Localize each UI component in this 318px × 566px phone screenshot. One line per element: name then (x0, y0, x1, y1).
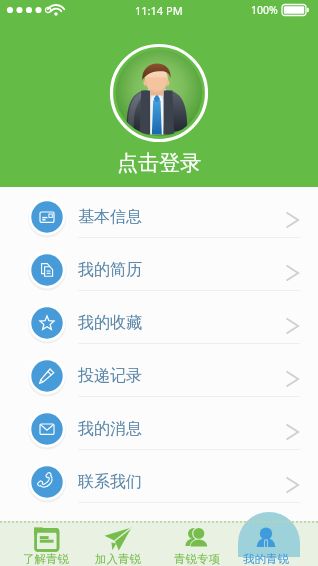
button[interactable]: 青锐专项 (162, 521, 232, 566)
staticText: 我的简历 (78, 260, 142, 280)
button[interactable]: 基本信息 (0, 190, 318, 243)
button[interactable]: 我的简历 (0, 243, 318, 296)
staticText: 基本信息 (78, 207, 142, 227)
button[interactable]: 加入青锐 (83, 521, 153, 566)
staticText: 了解青锐 (23, 552, 69, 566)
staticText: 我的收藏 (78, 313, 142, 333)
staticText: 加入青锐 (95, 552, 141, 566)
staticText: 联系我们 (78, 472, 142, 492)
button[interactable]: 联系我们 (0, 455, 318, 508)
button[interactable]: 点击登录 (117, 150, 201, 176)
staticText: 11:14 PM (135, 3, 183, 18)
button[interactable]: 了解青锐 (11, 521, 81, 566)
button[interactable]: 投递记录 (0, 349, 318, 402)
button[interactable]: 我的消息 (0, 402, 318, 455)
staticText: 我的消息 (78, 419, 142, 439)
button[interactable]: Profile avatar, tap to log in (110, 44, 208, 142)
button[interactable]: 我的青锐 (231, 521, 301, 566)
staticText: 100% (251, 3, 278, 17)
staticText: 青锐专项 (174, 552, 220, 566)
button[interactable]: 我的收藏 (0, 296, 318, 349)
staticText: 我的青锐 (243, 552, 289, 566)
staticText: 投递记录 (78, 366, 142, 386)
